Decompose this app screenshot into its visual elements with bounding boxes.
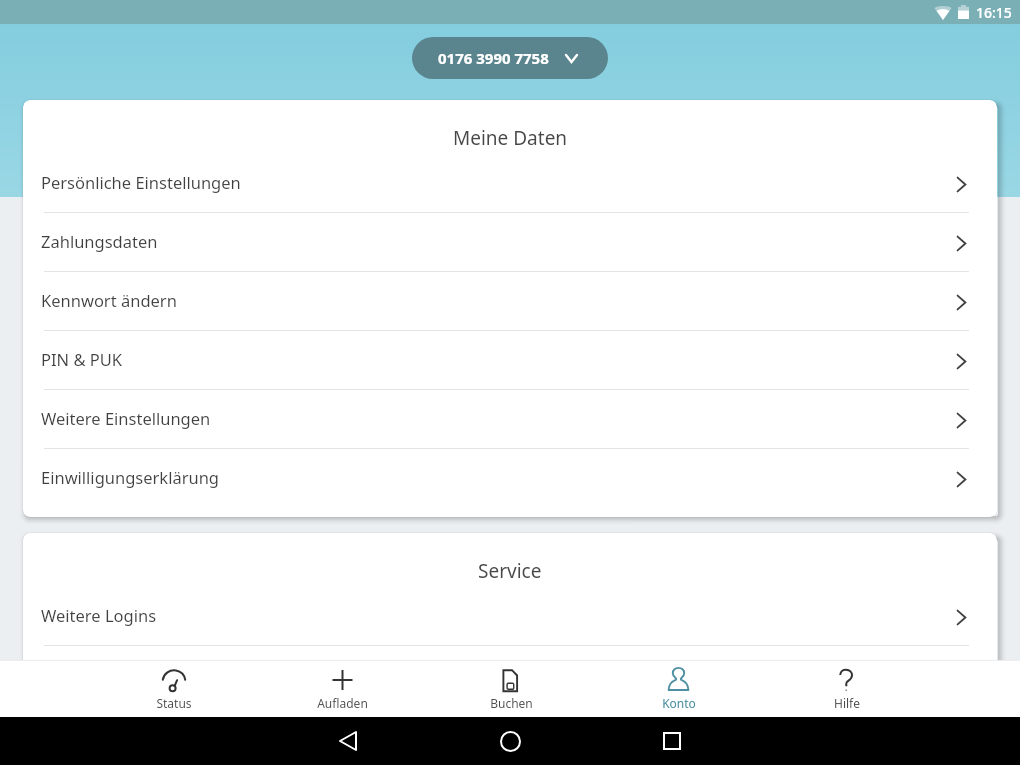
staticText: Status <box>156 695 192 711</box>
staticText: PIN & PUK <box>41 348 957 370</box>
button[interactable]: Buchen <box>427 661 595 717</box>
button[interactable]: Switch phone number <box>412 37 608 79</box>
staticText: Weitere Logins <box>41 604 957 626</box>
staticText: 0176 3990 7758 <box>438 48 549 68</box>
button[interactable]: Rechnungen <box>23 646 997 705</box>
staticText: Weitere Einstellungen <box>41 407 957 429</box>
staticText: Kennwort ändern <box>41 289 957 311</box>
button[interactable]: Kennwort ändern <box>23 272 997 331</box>
staticText: 16:15 <box>976 3 1012 22</box>
button[interactable]: Einwilligungserklärung <box>23 449 997 508</box>
button[interactable]: Hilfe <box>763 661 931 717</box>
staticText: Konto <box>662 695 696 711</box>
staticText: Meine Daten <box>453 125 568 151</box>
button[interactable]: PIN & PUK <box>23 331 997 390</box>
staticText: Service <box>478 558 542 584</box>
staticText: Einwilligungserklärung <box>41 466 957 488</box>
staticText: Persönliche Einstellungen <box>41 171 957 193</box>
button[interactable]: Weitere Logins <box>23 587 997 646</box>
button[interactable]: Home <box>492 723 528 759</box>
staticText: Buchen <box>490 695 533 711</box>
button[interactable]: Status <box>89 661 258 717</box>
staticText: Zahlungsdaten <box>41 230 957 252</box>
button[interactable]: Weitere Einstellungen <box>23 390 997 449</box>
staticText: Rechnungen <box>41 663 957 685</box>
staticText: Aufladen <box>317 695 368 711</box>
button[interactable]: Konto <box>595 661 763 717</box>
button[interactable]: Zahlungsdaten <box>23 213 997 272</box>
button[interactable]: Aufladen <box>258 661 427 717</box>
button[interactable]: Persönliche Einstellungen <box>23 154 997 213</box>
staticText: Hilfe <box>834 695 860 711</box>
button[interactable]: Recent apps <box>654 723 690 759</box>
button[interactable]: Back <box>330 723 366 759</box>
